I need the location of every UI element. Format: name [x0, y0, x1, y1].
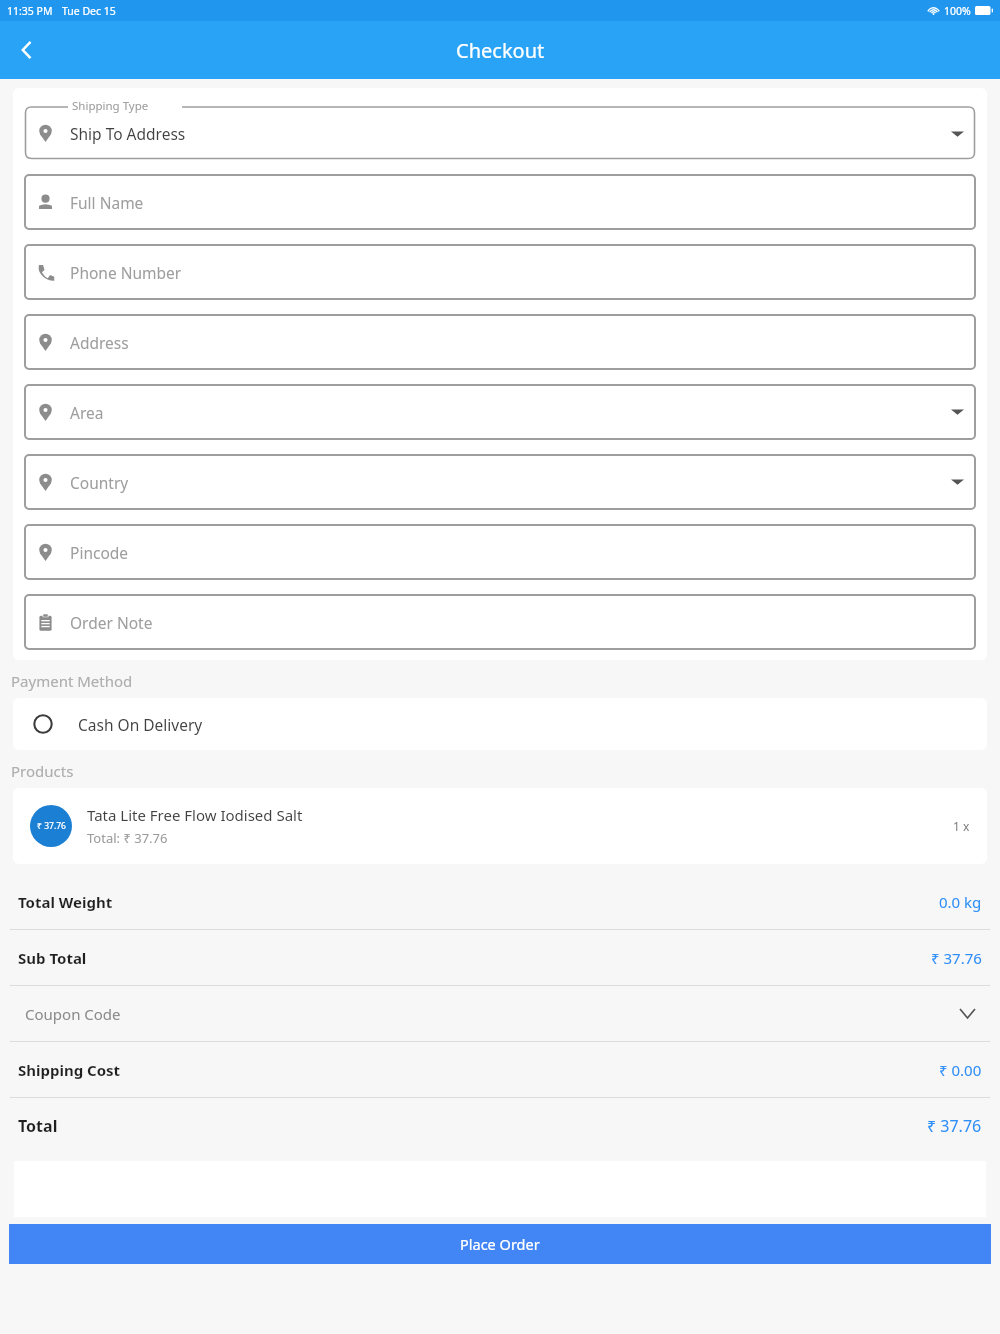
button[interactable]: ₹ 37.76 [13, 788, 987, 864]
button[interactable]: Back [4, 27, 50, 73]
button[interactable]: Full Name [24, 174, 976, 230]
button[interactable]: Phone Number [24, 244, 976, 300]
button[interactable]: Address [24, 314, 976, 370]
staticText: Coupon Code [25, 1004, 121, 1024]
staticText: Phone Number [70, 262, 182, 283]
button[interactable]: Pincode [24, 524, 976, 580]
staticText: Payment Method [11, 671, 133, 691]
staticText: 11:35 PM [7, 4, 53, 18]
staticText: ₹ 0.00 [939, 1060, 982, 1080]
button[interactable]: Country [24, 454, 976, 510]
staticText: Address [70, 332, 129, 353]
staticText: Cash On Delivery [78, 714, 203, 735]
staticText: Sub Total [18, 948, 87, 968]
staticText: Area [70, 402, 104, 423]
staticText: Tata Lite Free Flow Iodised Salt [87, 805, 303, 825]
staticText: Order Note [70, 612, 153, 633]
button[interactable]: Area [24, 384, 976, 440]
staticText: 1 x [953, 818, 970, 834]
staticText: Pincode [70, 542, 129, 563]
button[interactable]: Coupon Code [0, 986, 1000, 1041]
button[interactable]: Shipping Type [24, 98, 976, 160]
staticText: Total Weight [18, 892, 113, 912]
staticText: Checkout [456, 37, 545, 64]
button[interactable]: Order Note [24, 594, 976, 650]
button[interactable]: Cash On Delivery [13, 698, 987, 750]
staticText: Shipping Type [72, 98, 149, 114]
staticText: Country [70, 472, 129, 493]
staticText: Tue Dec 15 [62, 4, 116, 18]
staticText: Total [18, 1115, 58, 1137]
staticText: 100% [944, 4, 971, 18]
staticText: Shipping Cost [18, 1060, 121, 1080]
staticText: 0.0 kg [939, 892, 982, 912]
staticText: Total: ₹ 37.76 [87, 829, 168, 847]
staticText: Products [11, 761, 74, 781]
staticText: ₹ 37.76 [931, 948, 982, 968]
staticText: Place Order [460, 1234, 540, 1254]
staticText: ₹ 37.76 [37, 820, 66, 832]
button[interactable]: Place Order [9, 1224, 991, 1264]
staticText: Ship To Address [70, 123, 186, 144]
staticText: Full Name [70, 192, 144, 213]
staticText: ₹ 37.76 [927, 1115, 982, 1137]
